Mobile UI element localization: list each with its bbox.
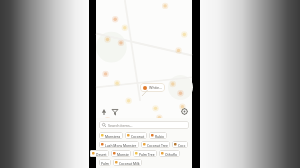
staticText: Othoflo (165, 152, 178, 156)
staticText: Lush Mons Monster (105, 143, 137, 147)
staticText: Search items... (108, 123, 133, 128)
staticText: Palm (101, 161, 109, 165)
button[interactable]: Lush Mons Monster (99, 141, 139, 148)
button[interactable]: Coconut Milk (113, 159, 142, 166)
button[interactable]: Coconut Tree (141, 141, 170, 148)
staticText: Cocc (178, 143, 186, 147)
staticText: Palm Tree (139, 152, 155, 156)
button[interactable]: Monste (111, 150, 131, 157)
staticText: Monstera (105, 134, 121, 138)
staticText: Coconut (131, 134, 145, 138)
staticText: White… (149, 85, 162, 90)
button[interactable]: Search items... (99, 121, 189, 129)
button[interactable]: Plant marker (99, 107, 108, 116)
button[interactable]: Settings (180, 107, 189, 116)
button[interactable]: Cocc (172, 141, 188, 148)
staticText: Coconut Milk (119, 161, 140, 165)
staticText: Desert (96, 152, 107, 156)
button[interactable]: Palm (99, 159, 111, 166)
button[interactable]: Othoflo (159, 150, 180, 157)
button[interactable]: Rubio (149, 132, 167, 139)
staticText: Monste (117, 152, 129, 156)
button[interactable]: White… (140, 83, 165, 92)
button[interactable]: Desert (90, 150, 109, 157)
button[interactable]: Monstera (99, 132, 123, 139)
button[interactable]: Filter (110, 107, 119, 116)
staticText: Coconut Tree (147, 143, 168, 147)
button[interactable]: Palm Tree (133, 150, 157, 157)
button[interactable]: Coconut (125, 132, 147, 139)
staticText: Rubio (155, 134, 165, 138)
